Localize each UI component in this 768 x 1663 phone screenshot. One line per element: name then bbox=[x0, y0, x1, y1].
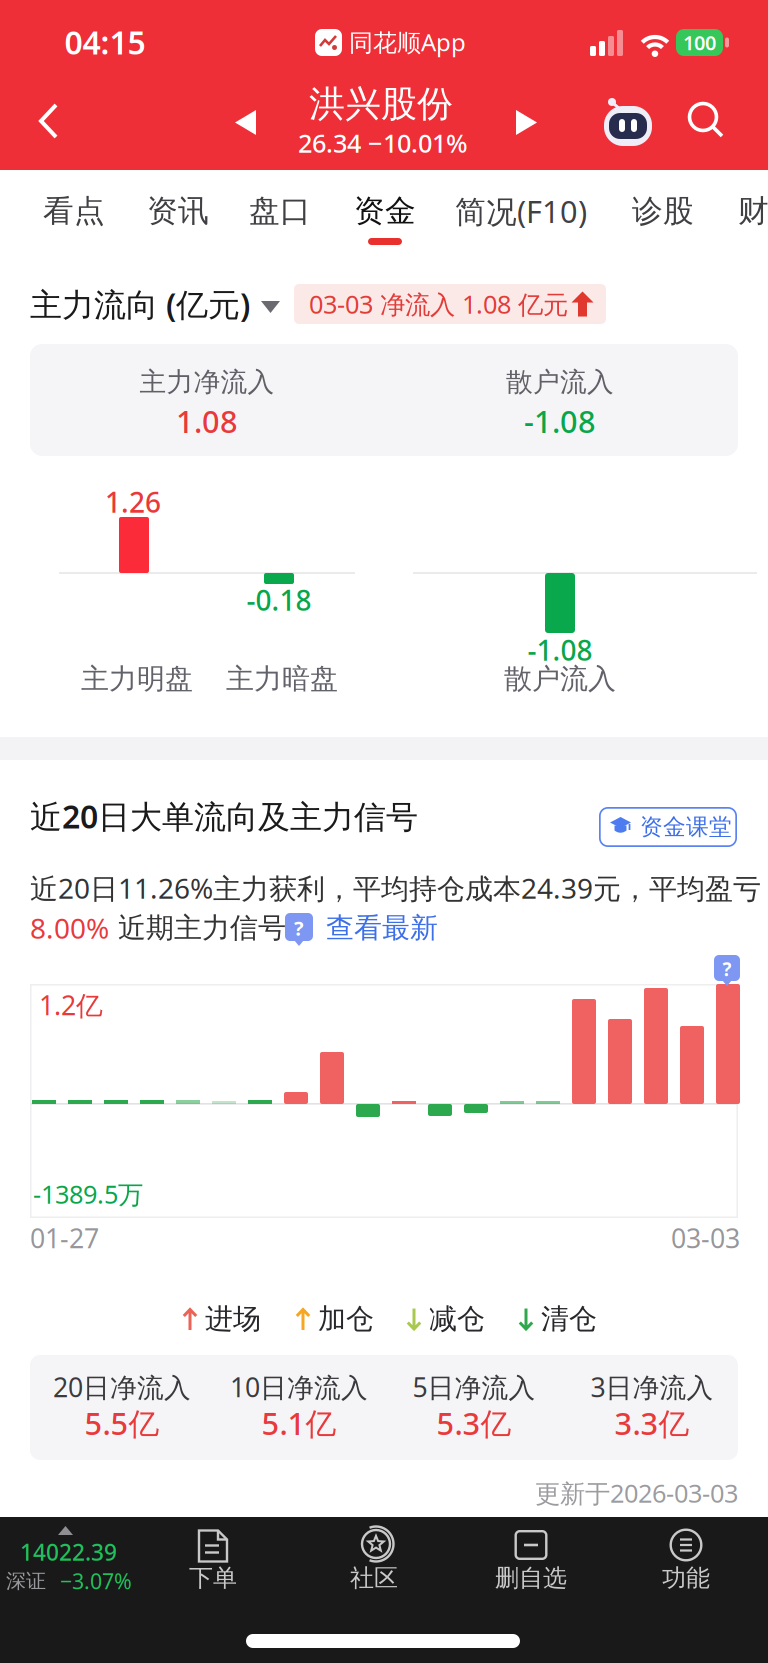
button[interactable]: 功能 bbox=[631, 1517, 741, 1612]
staticText: 诊股 bbox=[632, 192, 694, 230]
staticText: 清仓 bbox=[541, 1302, 597, 1336]
button[interactable]: Select flow metric bbox=[261, 301, 280, 313]
button[interactable]: Market index bbox=[0, 1517, 145, 1612]
staticText: 近20日11.26%主力获利，平均持仓成本24.39元，平均盈亏 bbox=[30, 869, 761, 907]
staticText: 8.00% bbox=[30, 909, 109, 947]
staticText: 03-03 bbox=[671, 1220, 740, 1256]
staticText: 社区 bbox=[350, 1563, 398, 1593]
staticText: 资金 bbox=[354, 192, 416, 230]
staticText: -1389.5万 bbox=[33, 1177, 143, 1211]
button[interactable]: Previous stock bbox=[235, 110, 256, 135]
staticText: 查看最新 bbox=[326, 911, 438, 945]
staticText: 5.5亿 bbox=[84, 1403, 159, 1443]
staticText: 3.3亿 bbox=[614, 1403, 689, 1443]
staticText: −3.07% bbox=[60, 1567, 132, 1595]
staticText: 1.2亿 bbox=[39, 987, 103, 1023]
staticText: 财务 bbox=[738, 192, 768, 230]
staticText: 1.26 bbox=[105, 483, 161, 521]
staticText: 主力流向 (亿元) bbox=[30, 283, 250, 325]
staticText: 加仓 bbox=[318, 1302, 374, 1336]
staticText: 5.1亿 bbox=[261, 1403, 336, 1443]
button[interactable]: Search bbox=[687, 101, 727, 141]
staticText: 下单 bbox=[189, 1563, 237, 1593]
staticText: 26.34 −10.01% bbox=[298, 126, 468, 160]
staticText: 100 bbox=[683, 29, 716, 56]
button[interactable]: Back bbox=[36, 101, 62, 141]
button[interactable]: AI assistant bbox=[602, 97, 654, 147]
staticText: 10日净流入 bbox=[230, 1369, 368, 1405]
staticText: 近期主力信号： bbox=[118, 911, 314, 945]
staticText: 主力暗盘 bbox=[226, 662, 338, 696]
staticText: 进场 bbox=[205, 1302, 261, 1336]
staticText: -0.18 bbox=[246, 581, 311, 619]
button[interactable]: 盘口 bbox=[228, 171, 332, 251]
button[interactable]: Next stock bbox=[516, 110, 537, 135]
button[interactable]: 删自选 bbox=[476, 1517, 586, 1612]
button[interactable]: 资金 bbox=[337, 171, 433, 251]
staticText: 04:15 bbox=[64, 21, 145, 63]
staticText: 更新于2026-03-03 bbox=[535, 1476, 738, 1510]
button[interactable]: 社区 bbox=[319, 1517, 429, 1612]
button[interactable]: 诊股 bbox=[611, 171, 715, 251]
button[interactable]: Chart help bbox=[714, 955, 768, 999]
staticText: 散户流入 bbox=[506, 366, 614, 398]
staticText: 资讯 bbox=[147, 192, 209, 230]
staticText: 主力净流入 bbox=[139, 366, 274, 398]
staticText: 简况(F10) bbox=[455, 191, 587, 231]
staticText: 5.3亿 bbox=[436, 1403, 511, 1443]
staticText: 同花顺App bbox=[349, 26, 466, 58]
button[interactable]: 财务 bbox=[717, 171, 768, 251]
staticText: 散户流入 bbox=[504, 662, 616, 696]
button[interactable]: 03-03 净流入 1.08 亿元 bbox=[294, 284, 606, 324]
button[interactable]: 看点 bbox=[22, 171, 126, 251]
staticText: -1.08 bbox=[524, 401, 596, 441]
staticText: 洪兴股份 bbox=[309, 82, 453, 126]
staticText: 删自选 bbox=[495, 1563, 567, 1593]
staticText: 资金课堂 bbox=[640, 813, 732, 841]
staticText: 3日净流入 bbox=[590, 1369, 713, 1405]
button[interactable]: 资金课堂 bbox=[599, 807, 737, 847]
staticText: 看点 bbox=[43, 192, 105, 230]
staticText: 01-27 bbox=[30, 1220, 99, 1256]
staticText: 功能 bbox=[662, 1563, 710, 1593]
button[interactable]: Recent signal help bbox=[285, 913, 645, 957]
staticText: 近20日大单流向及主力信号 bbox=[30, 795, 418, 837]
button[interactable]: 下单 bbox=[158, 1517, 268, 1612]
staticText: 5日净流入 bbox=[412, 1369, 535, 1405]
staticText: 主力明盘 bbox=[81, 662, 193, 696]
staticText: 03-03 净流入 1.08 亿元 bbox=[309, 287, 568, 321]
button[interactable]: 简况(F10) bbox=[443, 171, 599, 251]
staticText: ? bbox=[722, 957, 731, 981]
staticText: 14022.39 bbox=[20, 1537, 117, 1567]
staticText: -1.08 bbox=[527, 631, 592, 669]
staticText: 深证 bbox=[6, 1569, 46, 1593]
staticText: 1.08 bbox=[176, 401, 238, 441]
button[interactable]: 查看最新 bbox=[326, 908, 442, 948]
staticText: 减仓 bbox=[429, 1302, 485, 1336]
button[interactable]: 资讯 bbox=[126, 171, 230, 251]
staticText: 20日净流入 bbox=[53, 1369, 191, 1405]
staticText: ? bbox=[294, 915, 304, 941]
staticText: 盘口 bbox=[249, 192, 311, 230]
